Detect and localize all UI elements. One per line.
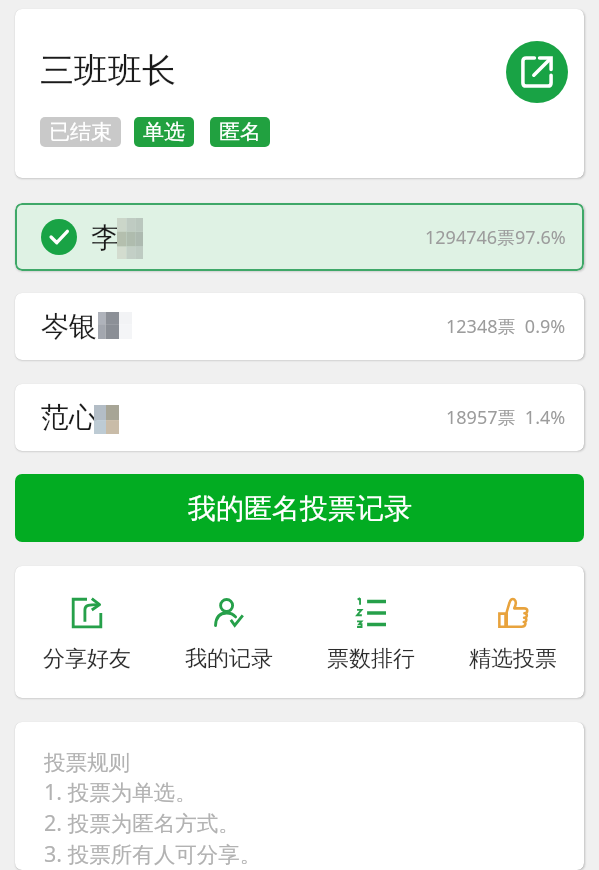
button[interactable]: 岑银 [15, 293, 584, 360]
button[interactable]: 李 [15, 203, 584, 271]
staticText: 李 [91, 220, 119, 255]
staticText: 单选 [143, 119, 185, 145]
button[interactable]: 我的匿名投票记录 [15, 474, 584, 542]
button[interactable]: 分享好友 [15, 566, 158, 698]
staticText: 我的记录 [185, 645, 273, 673]
staticText: 1294746票97.6% [425, 225, 566, 250]
button[interactable]: 票数排行 [300, 566, 442, 698]
button[interactable]: 范心 [15, 384, 584, 451]
staticText: 我的匿名投票记录 [188, 491, 412, 526]
staticText: 分享好友 [43, 645, 131, 673]
staticText: 18957票 1.4% [446, 405, 566, 430]
staticText: 三班班长 [40, 49, 176, 92]
staticText: 投票规则 1. 投票为单选。 2. 投票为匿名方式。 3. 投票所有人可分享。 [44, 749, 262, 869]
staticText: 已结束 [49, 119, 112, 145]
button[interactable]: 精选投票 [442, 566, 584, 698]
staticText: 12348票 0.9% [446, 314, 566, 339]
staticText: 岑银 [41, 309, 97, 344]
staticText: 票数排行 [327, 645, 415, 673]
staticText: 精选投票 [469, 645, 557, 673]
staticText: 范心 [41, 400, 97, 435]
button[interactable]: 我的记录 [158, 566, 300, 698]
button[interactable]: Share [506, 41, 568, 103]
staticText: 匿名 [219, 119, 261, 145]
